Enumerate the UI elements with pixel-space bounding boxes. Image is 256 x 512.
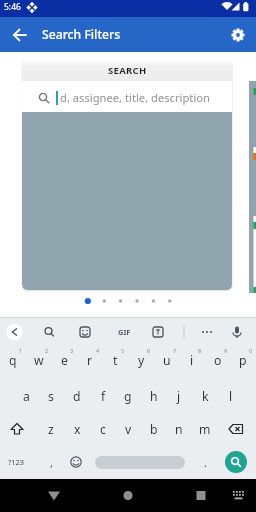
staticText: b bbox=[150, 421, 158, 438]
staticText: p bbox=[239, 352, 247, 369]
staticText: f bbox=[101, 388, 106, 405]
staticText: 7 bbox=[173, 347, 177, 354]
button[interactable]: d, assignee, title, description bbox=[22, 81, 232, 112]
button[interactable] bbox=[2, 17, 37, 52]
staticText: 5:46 bbox=[4, 1, 21, 13]
staticText: , bbox=[50, 455, 53, 470]
staticText: o bbox=[214, 352, 222, 369]
staticText: 4 bbox=[96, 347, 100, 354]
staticText: h bbox=[150, 388, 158, 405]
staticText: 8 bbox=[198, 347, 202, 354]
staticText: s bbox=[48, 388, 54, 405]
staticText: Search Filters bbox=[42, 26, 121, 43]
staticText: 5 bbox=[121, 347, 125, 354]
staticText: z bbox=[48, 421, 54, 438]
staticText: 6 bbox=[147, 347, 151, 354]
button[interactable] bbox=[225, 451, 247, 473]
staticText: w bbox=[34, 352, 44, 369]
staticText: k bbox=[202, 388, 209, 405]
staticText: g bbox=[124, 388, 132, 405]
staticText: GIF bbox=[118, 327, 131, 337]
staticText: v bbox=[125, 421, 132, 438]
staticText: 1 bbox=[19, 347, 23, 354]
button[interactable] bbox=[95, 456, 185, 469]
staticText: a bbox=[23, 388, 30, 405]
staticText: d, assignee, title, description bbox=[60, 90, 210, 105]
button[interactable] bbox=[226, 23, 250, 47]
staticText: u bbox=[163, 352, 171, 369]
staticText: x bbox=[74, 421, 81, 438]
staticText: SEARCH bbox=[108, 64, 147, 77]
staticText: 2 bbox=[45, 347, 49, 354]
button[interactable] bbox=[0, 479, 86, 512]
staticText: 0 bbox=[249, 347, 253, 354]
staticText: e bbox=[61, 352, 68, 369]
staticText: n bbox=[175, 421, 183, 438]
staticText: i bbox=[190, 352, 194, 369]
staticText: q bbox=[9, 352, 17, 369]
staticText: j bbox=[177, 388, 181, 405]
staticText: . bbox=[204, 455, 207, 470]
staticText: y bbox=[138, 352, 145, 369]
button[interactable] bbox=[86, 479, 171, 512]
staticText: 9 bbox=[224, 347, 228, 354]
staticText: d bbox=[73, 388, 81, 405]
staticText: l bbox=[229, 388, 233, 405]
staticText: t bbox=[113, 352, 118, 369]
staticText: 3 bbox=[70, 347, 74, 354]
button[interactable] bbox=[171, 479, 256, 512]
staticText: c bbox=[100, 421, 106, 438]
staticText: m bbox=[199, 421, 211, 438]
staticText: ?123 bbox=[8, 457, 25, 467]
staticText: r bbox=[87, 352, 93, 369]
